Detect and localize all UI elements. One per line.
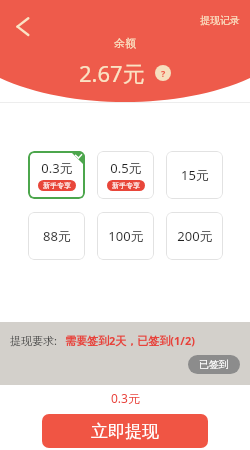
button[interactable]: 200元 [166, 212, 223, 260]
staticText: 15元 [181, 166, 209, 184]
staticText: 100元 [108, 227, 144, 245]
staticText: 200元 [177, 227, 213, 245]
staticText: 0.3元 [111, 390, 140, 406]
staticText: 新手专享 [112, 181, 140, 190]
staticText: 提现记录 [200, 14, 240, 27]
staticText: 0.3元 [41, 159, 73, 177]
staticText: 需要签到2天，已签到(1/2) [65, 333, 195, 348]
staticText: 提现要求: [10, 333, 57, 348]
button[interactable]: 0.5元 [97, 151, 154, 199]
staticText: 已签到 [199, 358, 229, 371]
staticText: 立即提现 [91, 421, 159, 442]
button[interactable]: 15元 [166, 151, 223, 199]
button[interactable]: 已签到 [188, 355, 240, 374]
button[interactable]: 88元 [28, 212, 85, 260]
staticText: 88元 [43, 227, 71, 245]
button[interactable]: Back [4, 10, 36, 42]
button[interactable]: Help [155, 65, 171, 81]
staticText: 0.5元 [110, 159, 142, 177]
button[interactable]: 立即提现 [42, 414, 208, 448]
button[interactable]: 100元 [97, 212, 154, 260]
staticText: 余额 [114, 36, 136, 50]
button[interactable]: 0.3元 [28, 151, 85, 199]
staticText: ? [161, 67, 166, 79]
button[interactable]: 提现记录 [198, 12, 242, 29]
staticText: 新手专享 [43, 181, 71, 190]
staticText: 2.67元 [79, 58, 145, 88]
